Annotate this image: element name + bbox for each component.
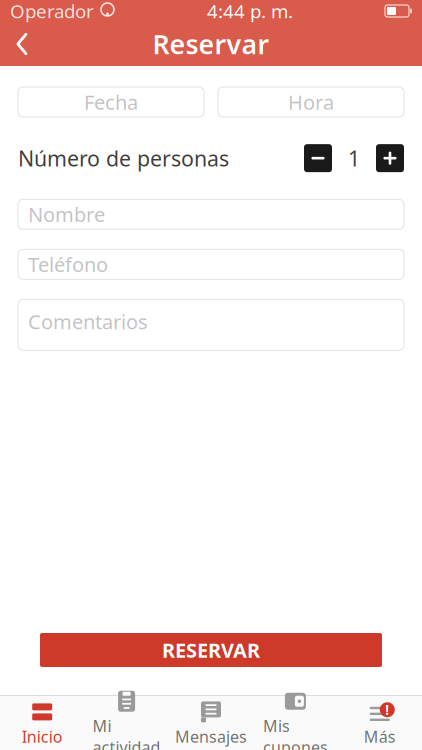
staticText: Teléfono: [28, 251, 108, 278]
button[interactable]: Increase: [376, 144, 404, 172]
staticText: Hora: [288, 89, 334, 115]
button[interactable]: !: [338, 695, 422, 750]
staticText: Más: [364, 726, 396, 747]
button[interactable]: Mis cupones: [253, 684, 338, 750]
staticText: Operador: [10, 0, 94, 23]
staticText: RESERVAR: [162, 637, 260, 663]
button[interactable]: Fecha: [18, 87, 204, 117]
staticText: Número de personas: [18, 144, 229, 172]
staticText: Reservar: [152, 26, 269, 62]
staticText: 4:44 p. m.: [207, 0, 293, 23]
button[interactable]: RESERVAR: [18, 633, 404, 667]
staticText: Fecha: [84, 89, 138, 115]
button[interactable]: Mensajes: [169, 695, 253, 750]
button[interactable]: Hora: [218, 87, 404, 117]
staticText: Mensajes: [175, 726, 247, 747]
button[interactable]: Comentarios: [18, 299, 404, 350]
button[interactable]: Mi actividad: [84, 684, 169, 750]
button[interactable]: Teléfono: [18, 249, 404, 279]
staticText: Inicio: [22, 726, 63, 747]
staticText: Nombre: [28, 201, 105, 228]
button[interactable]: Nombre: [18, 199, 404, 229]
button[interactable]: Inicio: [0, 695, 84, 750]
staticText: !: [385, 701, 389, 719]
staticText: Comentarios: [28, 308, 148, 335]
button[interactable]: Decrease: [304, 144, 332, 172]
staticText: Mi actividad: [93, 715, 161, 750]
staticText: Mis cupones: [263, 715, 328, 750]
button[interactable]: Back: [0, 22, 44, 66]
staticText: 1: [348, 144, 360, 172]
